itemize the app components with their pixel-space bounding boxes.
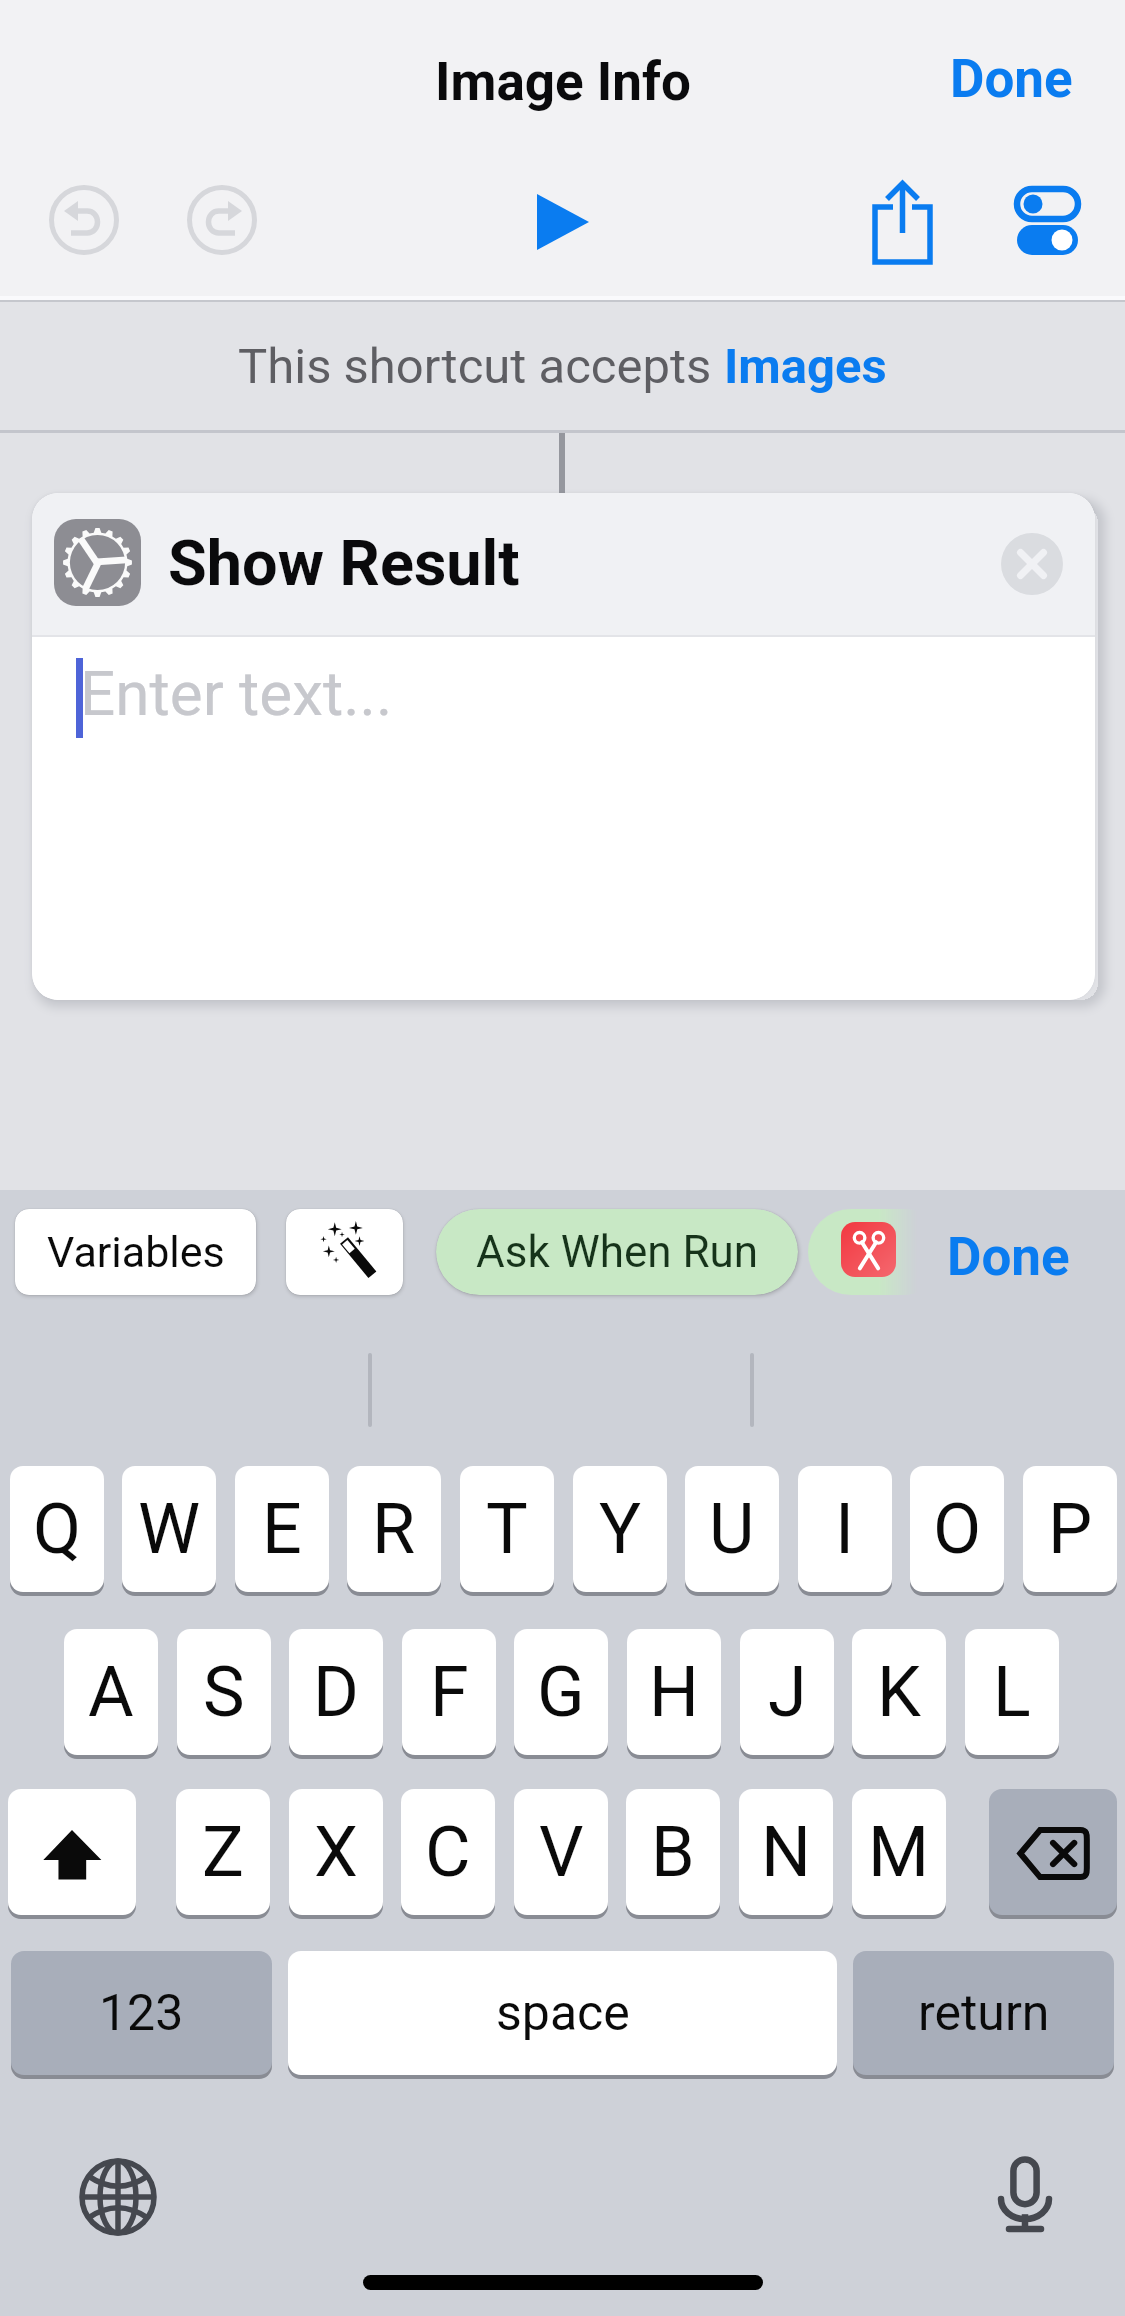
button[interactable]: Share <box>862 170 942 250</box>
button[interactable]: space <box>288 1951 837 2075</box>
staticText: 123 <box>99 1984 184 2043</box>
button[interactable]: Shortcut Input <box>808 1209 948 1295</box>
staticText: K <box>877 1651 921 1733</box>
button[interactable]: P <box>1023 1466 1117 1592</box>
button[interactable]: T <box>460 1466 554 1592</box>
staticText: L <box>993 1651 1031 1733</box>
button[interactable]: V <box>514 1789 608 1915</box>
staticText: E <box>262 1488 302 1570</box>
staticText: P <box>1048 1488 1093 1570</box>
button[interactable]: F <box>402 1629 496 1755</box>
staticText: Show Result <box>168 527 520 601</box>
staticText: space <box>496 1984 630 2043</box>
staticText: I <box>835 1488 855 1570</box>
staticText: return <box>918 1984 1050 2043</box>
staticText: X <box>314 1811 358 1893</box>
staticText: Image Info <box>435 51 691 113</box>
button[interactable]: U <box>685 1466 779 1592</box>
button[interactable]: E <box>235 1466 329 1592</box>
button[interactable]: 123 <box>11 1951 272 2075</box>
staticText: V <box>539 1811 584 1893</box>
button[interactable]: Images <box>724 338 887 395</box>
staticText: Q <box>33 1488 82 1570</box>
button[interactable]: Enter text... <box>32 637 1095 1000</box>
staticText: U <box>709 1488 755 1570</box>
staticText: R <box>372 1488 416 1570</box>
button[interactable]: Done <box>947 1226 1070 1288</box>
staticText: M <box>868 1811 930 1893</box>
button[interactable]: C <box>401 1789 495 1915</box>
staticText: D <box>313 1651 359 1733</box>
button[interactable]: H <box>627 1629 721 1755</box>
button[interactable]: S <box>177 1629 271 1755</box>
button[interactable]: return <box>853 1951 1114 2075</box>
staticText: O <box>933 1488 982 1570</box>
button[interactable]: Run shortcut <box>527 186 599 258</box>
button[interactable]: X <box>289 1789 383 1915</box>
button[interactable]: Done <box>950 48 1073 110</box>
staticText: B <box>651 1811 695 1893</box>
staticText: Done <box>950 48 1073 110</box>
button[interactable]: K <box>852 1629 946 1755</box>
staticText: Variables <box>47 1227 225 1277</box>
staticText: T <box>486 1488 528 1570</box>
staticText: C <box>425 1811 471 1893</box>
staticText: F <box>430 1651 469 1733</box>
staticText: H <box>649 1651 699 1733</box>
button[interactable]: B <box>626 1789 720 1915</box>
button[interactable]: L <box>965 1629 1059 1755</box>
button[interactable]: Show Result <box>32 493 1095 635</box>
staticText: W <box>138 1488 201 1570</box>
button[interactable]: G <box>514 1629 608 1755</box>
staticText: Y <box>599 1488 642 1570</box>
button[interactable]: W <box>122 1466 216 1592</box>
button[interactable]: I <box>798 1466 892 1592</box>
button[interactable]: Redo <box>187 185 257 255</box>
button[interactable]: Y <box>573 1466 667 1592</box>
button[interactable]: D <box>289 1629 383 1755</box>
button[interactable]: Next keyboard <box>79 2158 157 2236</box>
staticText: A <box>88 1651 134 1733</box>
button[interactable]: A <box>64 1629 158 1755</box>
button[interactable]: Undo <box>49 185 119 255</box>
button[interactable]: Backspace <box>989 1789 1117 1915</box>
staticText: Z <box>202 1811 244 1893</box>
button[interactable]: Shift <box>8 1789 136 1915</box>
button[interactable]: Q <box>10 1466 104 1592</box>
button[interactable]: Shortcut settings <box>1012 184 1084 256</box>
staticText: S <box>203 1651 245 1733</box>
staticText: G <box>537 1651 585 1733</box>
staticText: This shortcut accepts <box>238 338 724 395</box>
button[interactable]: J <box>740 1629 834 1755</box>
staticText: J <box>768 1651 807 1733</box>
button[interactable]: N <box>739 1789 833 1915</box>
button[interactable]: O <box>910 1466 1004 1592</box>
staticText: N <box>761 1811 811 1893</box>
button[interactable]: Ask When Run <box>436 1209 798 1295</box>
button[interactable]: Magic Variable <box>286 1209 403 1295</box>
button[interactable]: Z <box>176 1789 270 1915</box>
button[interactable]: Delete action <box>1001 533 1063 595</box>
button[interactable]: R <box>347 1466 441 1592</box>
staticText: Ask When Run <box>476 1226 759 1278</box>
staticText: Images <box>724 338 887 395</box>
staticText: Enter text... <box>80 657 393 730</box>
button[interactable]: Dictate <box>985 2155 1065 2235</box>
button[interactable]: M <box>852 1789 946 1915</box>
button[interactable]: Variables <box>15 1209 256 1295</box>
staticText: Done <box>947 1226 1070 1288</box>
